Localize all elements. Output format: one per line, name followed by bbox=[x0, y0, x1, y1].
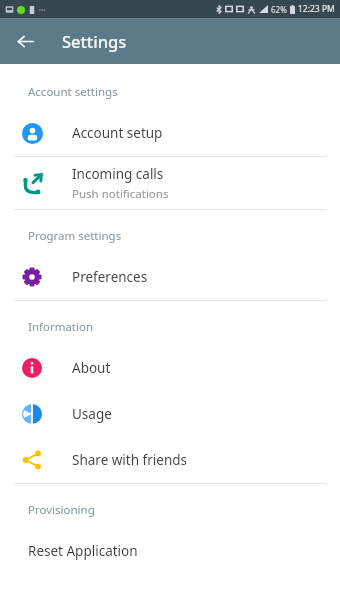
staticText: Push notifications bbox=[72, 186, 169, 202]
staticText: Provisioning bbox=[28, 502, 95, 518]
button[interactable]: About bbox=[0, 345, 340, 391]
button[interactable]: Preferences bbox=[0, 254, 340, 300]
staticText: Reset Application bbox=[28, 542, 138, 560]
staticText: Usage bbox=[72, 405, 112, 423]
staticText: About bbox=[72, 359, 111, 377]
button[interactable]: Account setup bbox=[0, 110, 340, 156]
button[interactable]: Reset Application bbox=[0, 528, 340, 574]
staticText: 62% bbox=[271, 4, 287, 15]
staticText: Preferences bbox=[72, 268, 148, 286]
staticText: Incoming calls bbox=[72, 165, 164, 183]
button[interactable]: Incoming calls bbox=[0, 157, 340, 209]
staticText: Account settings bbox=[28, 84, 118, 100]
button[interactable]: Usage bbox=[0, 391, 340, 437]
button[interactable]: Share with friends bbox=[0, 437, 340, 483]
button[interactable]: Back bbox=[10, 26, 40, 56]
staticText: Program settings bbox=[28, 228, 122, 244]
staticText: Share with friends bbox=[72, 451, 188, 469]
staticText: Settings bbox=[62, 30, 127, 52]
staticText: Information bbox=[28, 319, 94, 335]
staticText: 12:23 PM bbox=[298, 3, 335, 15]
staticText: Account setup bbox=[72, 124, 163, 142]
